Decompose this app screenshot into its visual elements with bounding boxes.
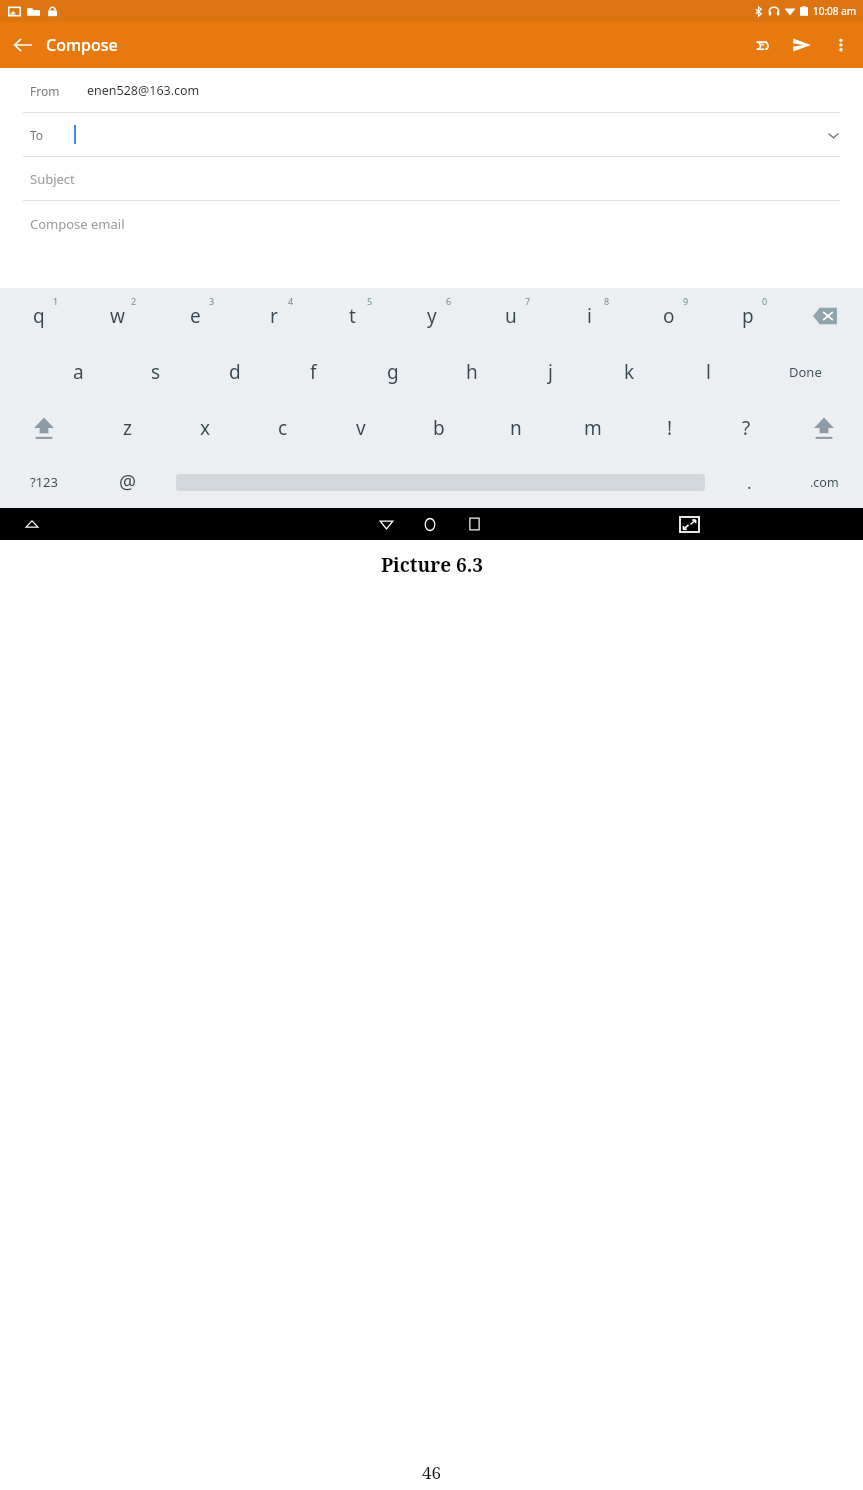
staticText: @ [119, 469, 137, 495]
staticText: o [663, 303, 675, 329]
button[interactable]: b [400, 400, 477, 456]
button[interactable]: To [0, 113, 863, 156]
button[interactable]: Home [408, 508, 452, 540]
staticText: k [624, 359, 635, 385]
staticText: b [433, 415, 445, 441]
button[interactable]: Shift [785, 400, 863, 456]
button[interactable]: z [88, 400, 166, 456]
button[interactable]: x [166, 400, 244, 456]
button[interactable]: v [322, 400, 400, 456]
staticText: 46 [422, 1461, 442, 1484]
staticText: enen528@163.com [87, 82, 200, 99]
staticText: 2 [131, 295, 137, 307]
button[interactable]: Resize window [675, 510, 703, 538]
staticText: 1 [53, 295, 59, 307]
button[interactable]: More options [823, 27, 859, 63]
button[interactable]: q [0, 288, 78, 344]
button[interactable]: h [432, 344, 511, 400]
staticText: Picture 6.3 [381, 552, 483, 578]
button[interactable]: c [244, 400, 322, 456]
button[interactable]: d [195, 344, 274, 400]
staticText: y [427, 303, 437, 329]
staticText: From [30, 83, 60, 99]
staticText: t [349, 303, 356, 329]
staticText: 10:08 am [813, 4, 857, 18]
staticText: m [584, 415, 602, 441]
button[interactable]: Done [748, 344, 863, 400]
staticText: To [30, 127, 44, 143]
staticText: j [548, 359, 553, 385]
button[interactable]: Send [781, 24, 823, 66]
button[interactable]: i [550, 288, 629, 344]
button[interactable]: g [353, 344, 432, 400]
button[interactable]: m [554, 400, 631, 456]
staticText: p [742, 303, 754, 329]
staticText: l [706, 359, 711, 385]
staticText: u [505, 303, 517, 329]
staticText: 0 [762, 295, 768, 307]
staticText: Done [789, 363, 822, 381]
staticText: ! [667, 415, 673, 441]
button[interactable]: Back [0, 22, 46, 68]
button[interactable]: y [392, 288, 471, 344]
button[interactable]: o [629, 288, 708, 344]
staticText: 3 [209, 295, 215, 307]
staticText: w [110, 303, 125, 329]
button[interactable]: From [0, 68, 863, 112]
button[interactable]: a [39, 344, 117, 400]
button[interactable]: Recent apps [452, 508, 496, 540]
staticText: . [747, 471, 752, 494]
button[interactable]: r [234, 288, 313, 344]
button[interactable]: Back [364, 508, 408, 540]
button[interactable]: f [274, 344, 353, 400]
staticText: 8 [604, 295, 610, 307]
button[interactable]: w [78, 288, 156, 344]
staticText: v [356, 415, 366, 441]
button[interactable]: j [511, 344, 590, 400]
staticText: 7 [525, 295, 531, 307]
button[interactable]: ? [708, 400, 785, 456]
button[interactable]: k [590, 344, 669, 400]
button[interactable]: n [477, 400, 554, 456]
staticText: 9 [683, 295, 689, 307]
staticText: f [310, 359, 317, 385]
staticText: .com [810, 474, 839, 491]
button[interactable]: u [471, 288, 550, 344]
staticText: ? [742, 415, 751, 441]
staticText: c [278, 415, 288, 441]
staticText: 6 [446, 295, 452, 307]
staticText: q [33, 303, 45, 329]
staticText: n [510, 415, 522, 441]
staticText: a [73, 359, 84, 385]
button[interactable]: Attach file [739, 24, 781, 66]
staticText: s [151, 359, 161, 385]
staticText: Subject [30, 170, 75, 188]
button[interactable]: ! [631, 400, 708, 456]
button[interactable]: Shift [0, 400, 88, 456]
button[interactable]: e [156, 288, 234, 344]
staticText: x [200, 415, 211, 441]
staticText: g [387, 359, 399, 385]
staticText: 4 [288, 295, 294, 307]
button[interactable]: l [669, 344, 748, 400]
button[interactable]: p [708, 288, 787, 344]
button[interactable]: Compose email [0, 201, 863, 288]
staticText: ?123 [30, 473, 58, 491]
button[interactable]: Backspace [787, 288, 863, 344]
button[interactable]: Subject [0, 157, 863, 200]
button[interactable]: t [313, 288, 392, 344]
staticText: 5 [367, 295, 373, 307]
staticText: e [190, 303, 201, 329]
staticText: Compose [46, 34, 118, 56]
button[interactable]: Expand [18, 510, 46, 538]
staticText: h [466, 359, 478, 385]
staticText: r [270, 303, 278, 329]
button[interactable]: @ [88, 456, 168, 508]
staticText: Compose email [30, 215, 125, 233]
button[interactable]: ?123 [0, 456, 88, 508]
button[interactable]: Space [168, 456, 713, 508]
button[interactable]: .com [785, 456, 863, 508]
button[interactable]: s [117, 344, 195, 400]
button[interactable]: . [713, 456, 785, 508]
button[interactable]: Expand recipients [821, 123, 845, 147]
